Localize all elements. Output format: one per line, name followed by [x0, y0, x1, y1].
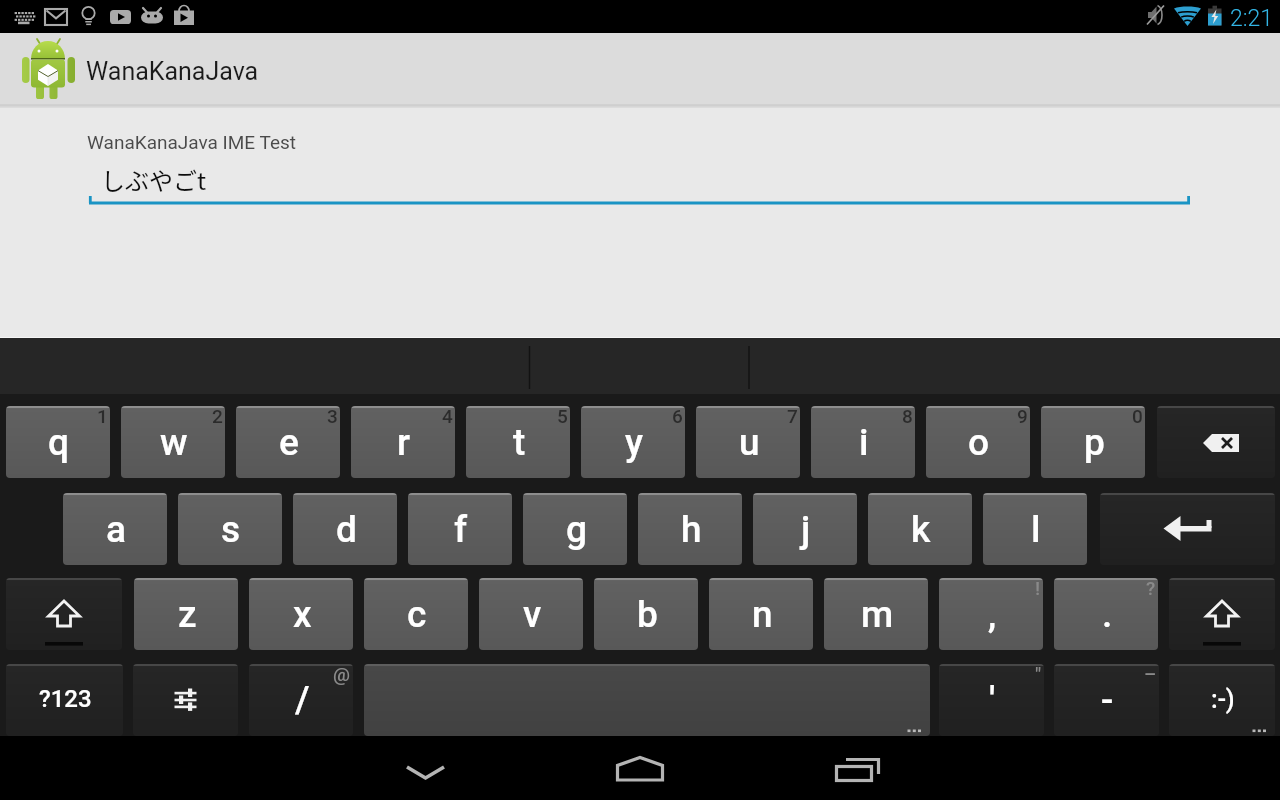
staticText: k [911, 508, 931, 551]
staticText: 0 [1132, 406, 1143, 427]
button[interactable]: f [408, 493, 512, 565]
staticText: q [48, 421, 70, 464]
button[interactable]: m [824, 578, 928, 650]
staticText: b [637, 593, 658, 636]
staticText: j [801, 508, 811, 551]
staticText: n [752, 593, 773, 636]
staticText: v [523, 593, 542, 636]
staticText: h [681, 508, 702, 551]
button[interactable]: settings [133, 664, 238, 736]
button[interactable]: k [868, 493, 972, 565]
button[interactable]: enter [1100, 493, 1275, 565]
staticText: d [336, 508, 357, 551]
button[interactable]: t [466, 406, 570, 478]
button[interactable]: e [236, 406, 340, 478]
button[interactable]: y [581, 406, 685, 478]
staticText: ? [1146, 578, 1156, 599]
staticText: - [1101, 678, 1114, 721]
button[interactable]: o [926, 406, 1030, 478]
button[interactable]: . [1054, 578, 1158, 650]
staticText: しぶやごt [101, 162, 207, 197]
staticText: 7 [787, 406, 798, 427]
button[interactable]: ?123 [6, 664, 123, 736]
staticText: , [988, 593, 997, 636]
button[interactable]: Hide keyboard [395, 736, 455, 800]
staticText: 1 [97, 406, 108, 427]
button[interactable]: i [811, 406, 915, 478]
staticText: ! [1035, 578, 1041, 599]
staticText: / [295, 678, 310, 721]
button[interactable]: a [63, 493, 167, 565]
staticText: x [293, 593, 312, 636]
staticText: m [861, 593, 894, 636]
button[interactable]: x [249, 578, 353, 650]
button[interactable]: c [364, 578, 468, 650]
staticText: z [178, 593, 197, 636]
button[interactable]: :-) [1169, 664, 1275, 736]
button[interactable]: l [983, 493, 1087, 565]
staticText: f [454, 508, 468, 551]
button[interactable]: v [479, 578, 583, 650]
staticText: u [739, 421, 760, 464]
staticText: 2 [212, 406, 223, 427]
staticText: o [968, 421, 990, 464]
button[interactable]: p [1041, 406, 1145, 478]
staticText: WanaKanaJava [86, 57, 259, 86]
button[interactable]: g [523, 493, 627, 565]
staticText: ?123 [39, 685, 92, 713]
button[interactable]: space [364, 664, 930, 736]
button[interactable]: n [709, 578, 813, 650]
button[interactable]: Home [610, 736, 670, 800]
button[interactable]: w [121, 406, 225, 478]
staticText: @ [333, 664, 351, 685]
staticText: 5 [557, 406, 568, 427]
staticText: WanaKanaJava IME Test [87, 131, 296, 153]
button[interactable]: q [6, 406, 110, 478]
staticText: l [1031, 508, 1041, 551]
staticText: 8 [902, 406, 913, 427]
button[interactable]: d [293, 493, 397, 565]
staticText: p [1084, 421, 1105, 464]
staticText: r [397, 421, 411, 464]
button[interactable]: shift [1169, 578, 1275, 650]
staticText: t [513, 421, 526, 464]
button[interactable]: j [753, 493, 857, 565]
staticText: g [566, 508, 587, 551]
button[interactable]: h [638, 493, 742, 565]
staticText: " [1035, 664, 1042, 685]
staticText: 9 [1017, 406, 1028, 427]
button[interactable]: / [249, 664, 353, 736]
button[interactable]: ' [939, 664, 1044, 736]
button[interactable]: Recent apps [828, 736, 888, 800]
staticText: e [279, 421, 299, 464]
staticText: s [221, 508, 241, 551]
button[interactable]: b [594, 578, 698, 650]
staticText: a [106, 508, 127, 551]
staticText: :-) [1211, 685, 1235, 714]
button[interactable]: r [351, 406, 455, 478]
staticText: 2:21 [1230, 5, 1274, 32]
staticText: . [1102, 593, 1113, 636]
staticText: – [1144, 664, 1157, 685]
staticText: ' [989, 678, 996, 721]
staticText: y [625, 421, 644, 464]
staticText: i [859, 421, 869, 464]
button[interactable]: z [134, 578, 238, 650]
button[interactable]: s [178, 493, 282, 565]
staticText: 3 [327, 406, 338, 427]
staticText: c [407, 593, 427, 636]
button[interactable]: shift [6, 578, 122, 650]
staticText: w [160, 421, 188, 464]
button[interactable]: - [1054, 664, 1159, 736]
button[interactable]: del [1157, 406, 1275, 478]
staticText: 6 [672, 406, 683, 427]
button[interactable]: u [696, 406, 800, 478]
button[interactable]: , [939, 578, 1043, 650]
staticText: 4 [442, 406, 453, 427]
